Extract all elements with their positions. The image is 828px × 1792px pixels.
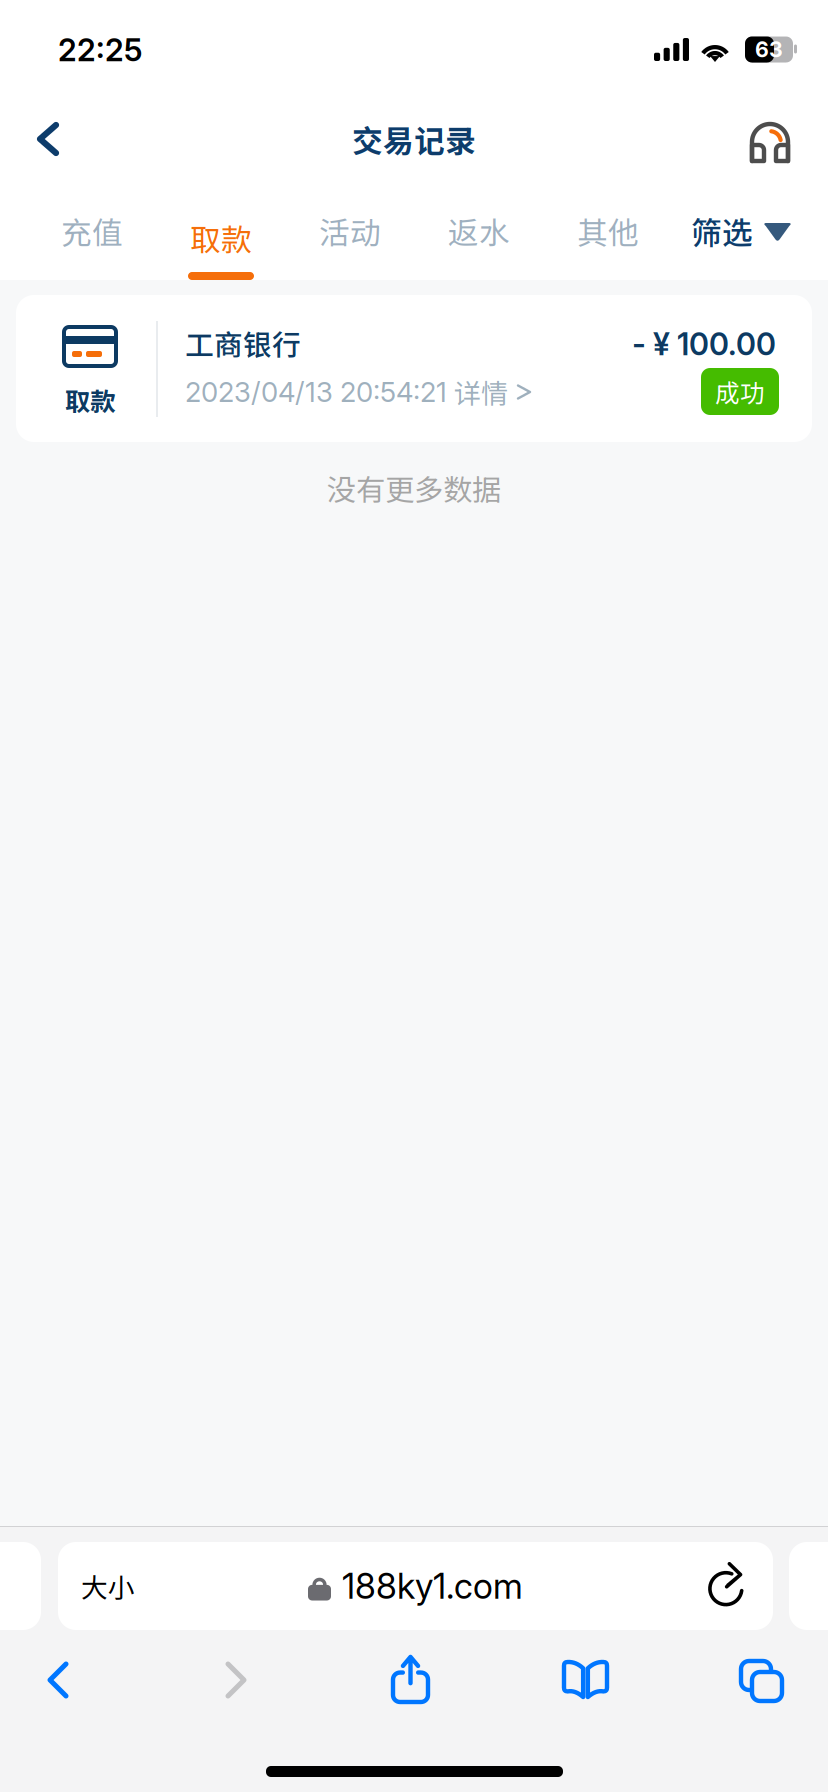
staticText: 工商银行: [185, 322, 301, 364]
button[interactable]: 充值: [37, 195, 147, 267]
button[interactable]: 筛选: [686, 195, 826, 267]
staticText: 交易记录: [352, 117, 476, 161]
staticText: 188ky1.com: [342, 1565, 523, 1607]
button[interactable]: 其他: [553, 195, 663, 267]
staticText: 大小: [81, 1567, 135, 1605]
staticText: - ¥ 100.00: [632, 325, 776, 362]
staticText: 22:25: [58, 31, 142, 68]
staticText: 没有更多数据: [327, 467, 501, 509]
button[interactable]: Tabs: [729, 1649, 794, 1713]
button[interactable]: 大小: [58, 1542, 773, 1630]
button[interactable]: 详情: [454, 375, 559, 409]
button[interactable]: 返水: [424, 195, 534, 267]
button[interactable]: Bookmarks: [552, 1645, 619, 1714]
button[interactable]: Back: [28, 1646, 88, 1714]
button[interactable]: 取款: [166, 195, 276, 281]
staticText: 充值: [61, 209, 123, 253]
button[interactable]: Back: [18, 104, 78, 174]
staticText: 取款: [190, 216, 252, 260]
staticText: 其他: [577, 209, 639, 253]
staticText: 63: [755, 37, 783, 62]
button[interactable]: Customer service: [734, 107, 806, 179]
button[interactable]: Share: [377, 1645, 444, 1713]
button[interactable]: 活动: [295, 195, 405, 267]
staticText: 取款: [65, 382, 115, 418]
staticText: 成功: [715, 374, 765, 409]
staticText: 详情: [454, 372, 508, 412]
button[interactable]: Forward: [206, 1646, 266, 1714]
staticText: 活动: [319, 209, 381, 253]
staticText: 筛选: [691, 209, 753, 253]
staticText: 2023/04/13 20:54:21: [185, 375, 447, 409]
staticText: 返水: [448, 209, 510, 253]
